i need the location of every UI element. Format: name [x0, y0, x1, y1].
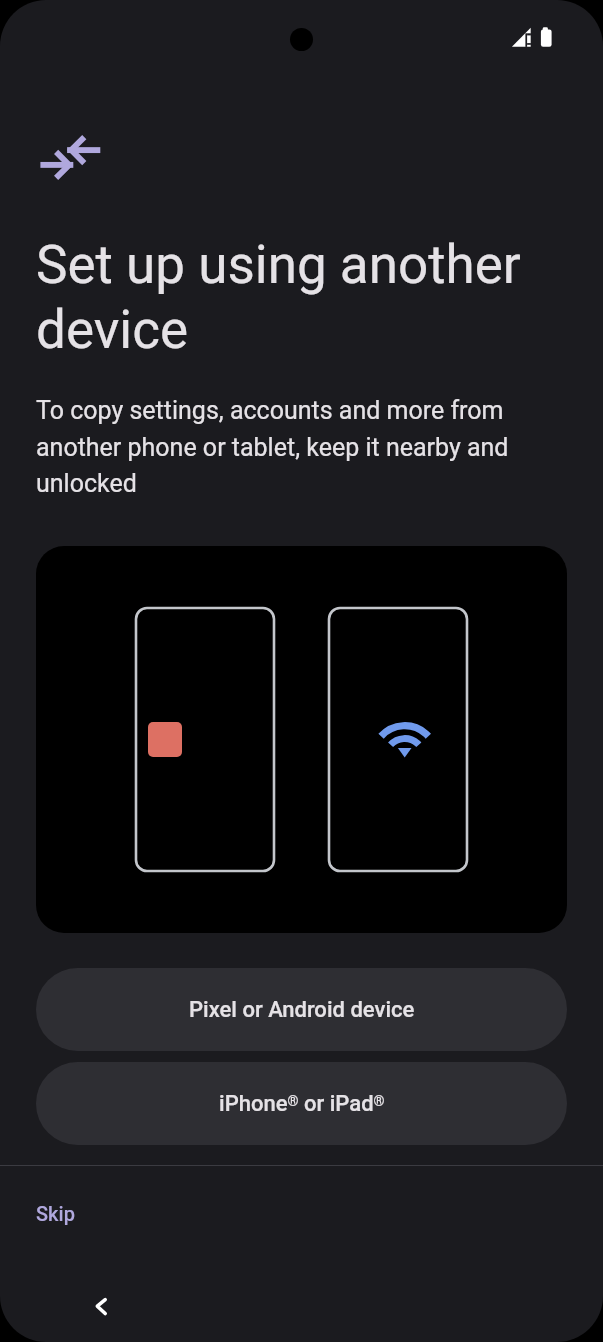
button[interactable]: Skip	[0, 1166, 603, 1261]
button[interactable]: iPhone® or iPad®	[36, 1062, 567, 1145]
other: Transfer data	[36, 132, 108, 184]
staticText: To copy settings, accounts and more from…	[36, 396, 536, 498]
staticText: Pixel or Android device	[189, 997, 415, 1023]
button[interactable]: Back	[0, 1262, 603, 1342]
button[interactable]: Pixel or Android device	[36, 968, 567, 1051]
staticText: Skip	[36, 1202, 75, 1225]
staticText: iPhone® or iPad®	[219, 1091, 385, 1117]
staticText: Set up using another device	[36, 234, 546, 361]
